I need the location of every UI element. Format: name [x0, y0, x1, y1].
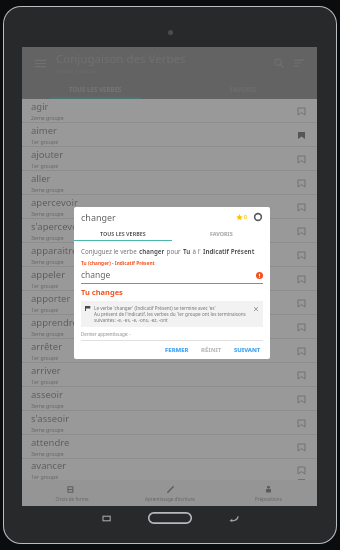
staticText: aller: [31, 172, 51, 185]
button[interactable]: Favorite apprendre: [294, 320, 308, 334]
staticText: 1er groupe: [31, 378, 59, 385]
staticText: Tu: [183, 247, 191, 255]
button[interactable]: Favorite agir: [294, 104, 308, 118]
button[interactable]: agir: [22, 99, 317, 122]
button[interactable]: appeler: [22, 267, 317, 290]
button[interactable]: Favorite appeler: [294, 272, 308, 286]
button[interactable]: apporter: [22, 291, 317, 314]
staticText: RÉINIT: [201, 346, 222, 354]
staticText: appeler: [31, 268, 66, 281]
staticText: TOUS LES VERBES: [69, 85, 122, 93]
staticText: s'asseoir: [31, 412, 70, 425]
staticText: Conjuguez le verbe: [81, 247, 139, 255]
button[interactable]: Favorite attendre: [294, 440, 308, 454]
staticText: aimer: [31, 124, 57, 137]
button[interactable]: Choix de forme: [22, 480, 121, 506]
staticText: Tu changes: [81, 287, 123, 297]
button[interactable]: Favorite arriver: [294, 368, 308, 382]
button[interactable]: Menu: [30, 53, 50, 73]
button[interactable]: aller: [22, 171, 317, 194]
button[interactable]: Favorite apercevoir: [294, 200, 308, 214]
staticText: 3eme groupe: [31, 426, 64, 433]
staticText: FAVORIS: [210, 230, 233, 237]
button[interactable]: ajouter: [22, 147, 317, 170]
staticText: TOUS LES VERBES: [100, 230, 146, 237]
staticText: attendre: [31, 436, 70, 449]
button[interactable]: TOUS LES VERBES: [74, 227, 172, 240]
staticText: 1er groupe: [31, 354, 59, 361]
button[interactable]: s'asseoir: [22, 411, 317, 434]
button[interactable]: aimer: [22, 123, 317, 146]
button[interactable]: FERMER: [163, 343, 191, 357]
staticText: ajouter: [31, 148, 64, 161]
staticText: Indicatif Présent: [203, 247, 255, 255]
button[interactable]: Home: [142, 510, 198, 526]
button[interactable]: Favorite arrêter: [294, 344, 308, 358]
staticText: Conjugaison des Verbes: [56, 51, 186, 67]
button[interactable]: Close hint: [252, 305, 259, 312]
staticText: Dernier apprentissage: -: [81, 331, 131, 337]
staticText: change: [81, 269, 111, 281]
button[interactable]: Favorite apparaitre: [294, 248, 308, 262]
staticText: suivantes: -e, -es, -e, -ons, -ez, -ont: [94, 317, 168, 323]
button[interactable]: s'apercevoir: [22, 219, 317, 242]
staticText: avancer: [31, 459, 67, 472]
button[interactable]: Favorite asseoir: [294, 392, 308, 406]
button[interactable]: arrêter: [22, 339, 317, 362]
button[interactable]: apparaitre: [22, 243, 317, 266]
button[interactable]: avancer: [22, 459, 317, 480]
staticText: apprendre: [31, 316, 78, 329]
staticText: Prépositions: [255, 496, 282, 502]
button[interactable]: arriver: [22, 363, 317, 386]
button[interactable]: Favorite: [236, 214, 247, 221]
button[interactable]: apercevoir: [22, 195, 317, 218]
button[interactable]: asseoir: [22, 387, 317, 410]
button[interactable]: Settings: [253, 212, 263, 222]
staticText: arrêter: [31, 340, 63, 353]
staticText: 1er groupe: [31, 306, 59, 313]
button[interactable]: Recents: [72, 507, 142, 529]
button[interactable]: FAVORIS: [172, 227, 270, 240]
button[interactable]: Aprentissage d'écriture: [121, 480, 219, 506]
staticText: apercevoir: [31, 196, 78, 209]
button[interactable]: Favorite ajouter: [294, 152, 308, 166]
staticText: 1er groupe: [31, 473, 59, 480]
staticText: agir: [31, 100, 49, 113]
button[interactable]: Favorite apporter: [294, 296, 308, 310]
button[interactable]: Favorite avancer: [294, 463, 308, 477]
staticText: apparaitre: [31, 244, 78, 257]
staticText: Tu (changer) - Indicatif Présent: [81, 260, 155, 267]
button[interactable]: Favorite aimer: [294, 128, 308, 142]
staticText: s'apercevoir: [31, 220, 85, 233]
staticText: 0: [244, 214, 247, 221]
staticText: 2eme groupe: [31, 114, 64, 121]
staticText: 1er groupe: [31, 282, 59, 289]
staticText: 3eme groupe: [31, 258, 64, 265]
staticText: Aprentissage d'écriture: [145, 496, 195, 502]
button[interactable]: Prépositions: [219, 480, 317, 506]
staticText: 3eme groupe: [31, 330, 64, 337]
staticText: changer: [81, 211, 116, 223]
staticText: 3eme groupe: [31, 402, 64, 409]
staticText: 1er groupe: [31, 162, 59, 169]
button[interactable]: Favorite s'apercevoir: [294, 224, 308, 238]
staticText: Le verbe 'changer' (Indicatif Présent) s…: [94, 305, 216, 311]
staticText: 3eme groupe: [31, 210, 64, 217]
button[interactable]: Favorite aller: [294, 176, 308, 190]
staticText: Choix de forme: [55, 496, 89, 502]
button[interactable]: apprendre: [22, 315, 317, 338]
staticText: arriver: [31, 364, 61, 377]
button[interactable]: Favorite s'asseoir: [294, 416, 308, 430]
button[interactable]: RÉINIT: [199, 343, 224, 357]
staticText: apporter: [31, 292, 71, 305]
button[interactable]: Back: [198, 507, 268, 529]
staticText: FERMER: [165, 346, 189, 354]
button[interactable]: TOUS LES VERBES: [22, 78, 169, 99]
button[interactable]: SUIVANT: [232, 343, 263, 357]
staticText: FAVORIS: [230, 85, 257, 93]
staticText: 3eme groupe: [31, 450, 64, 457]
button[interactable]: attendre: [22, 435, 317, 458]
